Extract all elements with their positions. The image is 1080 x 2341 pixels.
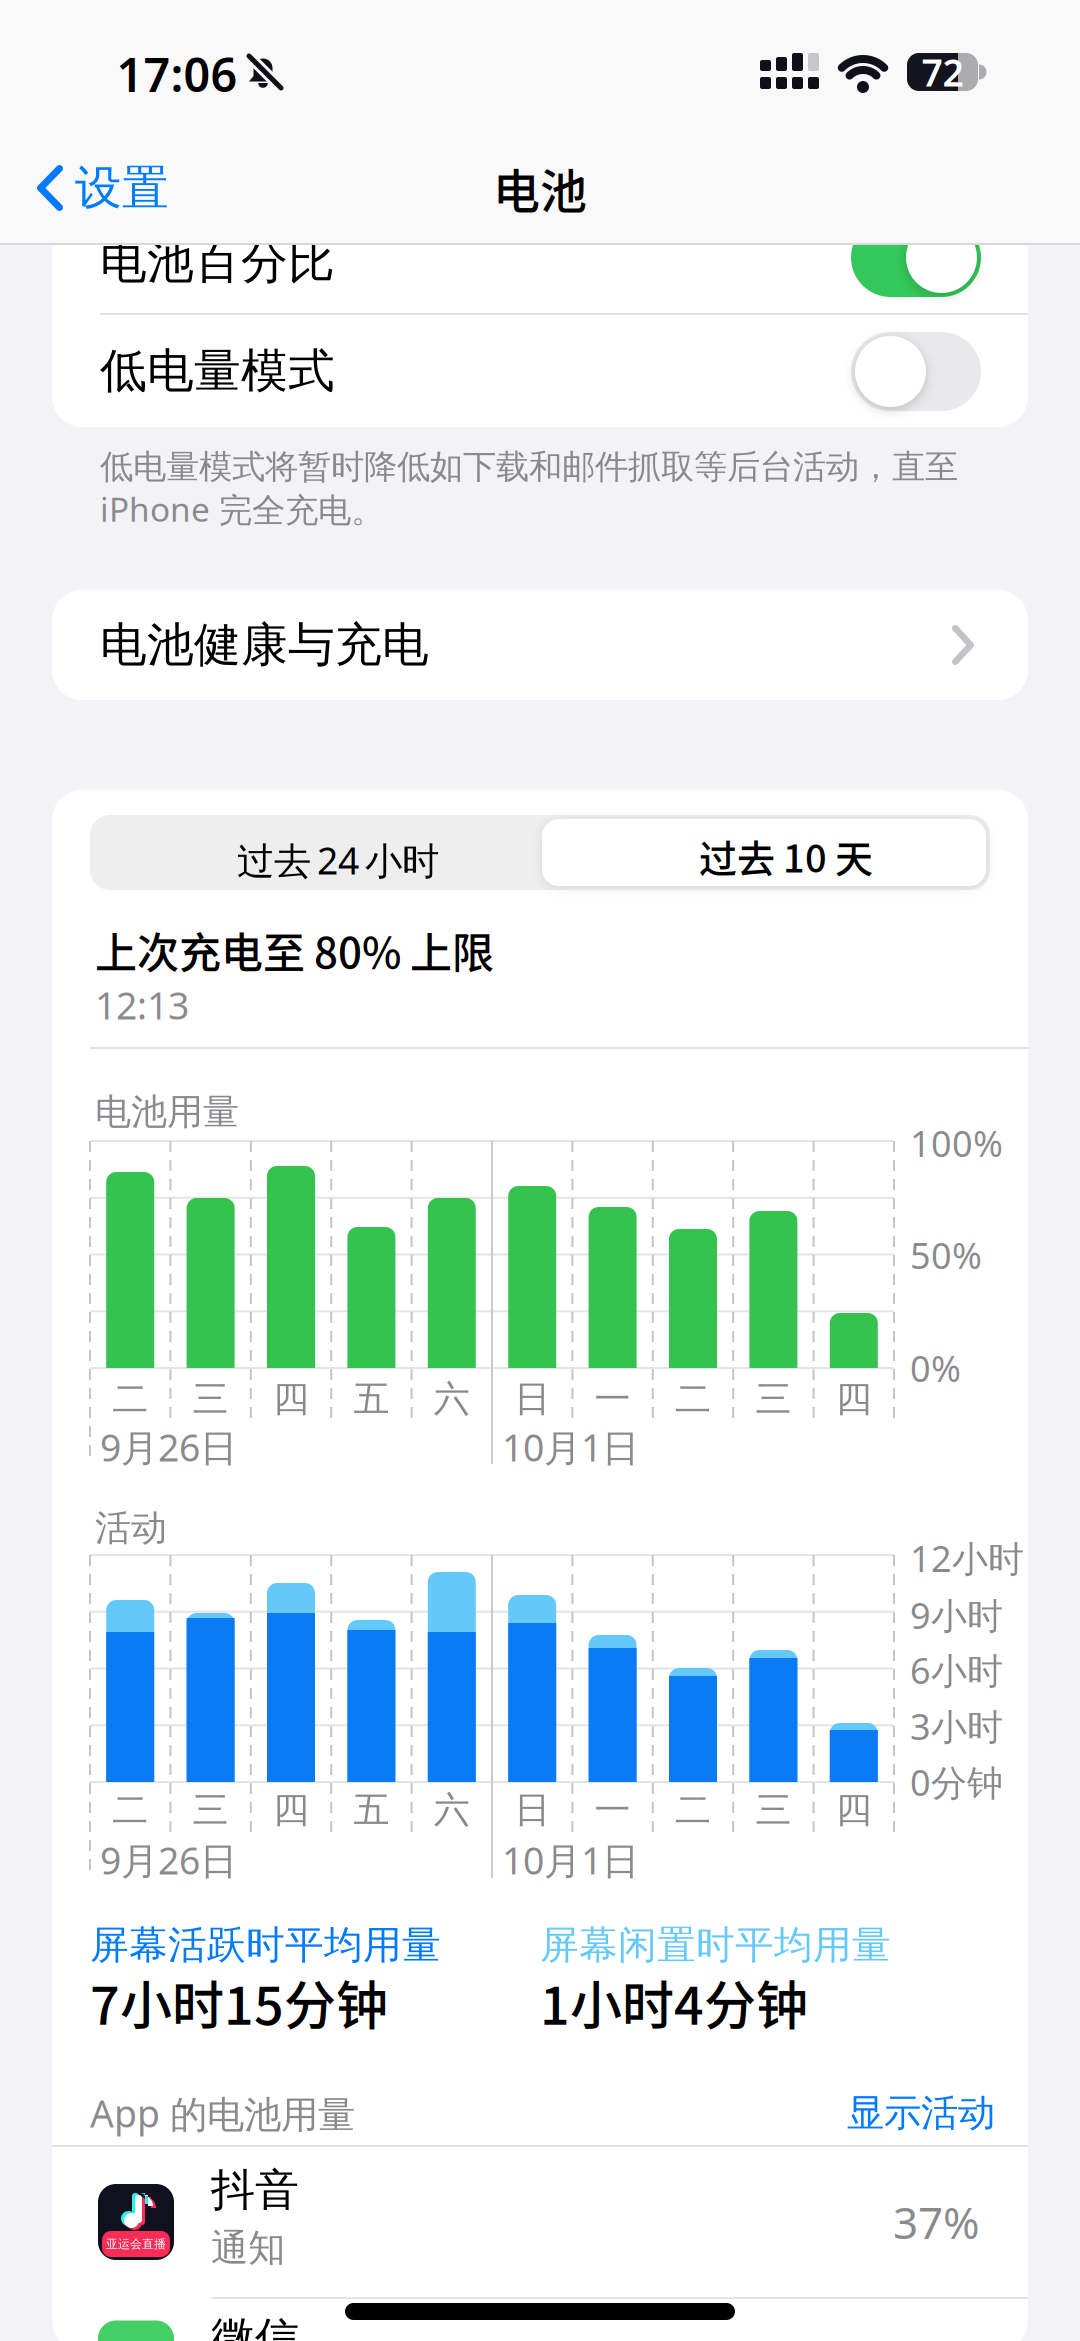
staticText: 0% [910,1344,961,1392]
staticText: 四 [836,1788,872,1832]
staticText: 二 [675,1788,711,1832]
staticText: 四 [273,1377,309,1421]
staticText: 过去 10 天 [699,828,873,883]
staticText: 六 [434,1788,470,1832]
staticText: 9小时 [910,1591,1003,1639]
staticText: 上次充电至 80% 上限 [95,920,494,980]
staticText: 四 [836,1377,872,1421]
staticText: 一 [595,1788,631,1832]
button[interactable]: 过去 10 天 [542,819,986,886]
staticText: 通知 [211,2225,285,2271]
staticText: 电池用量 [95,1090,239,1134]
staticText: 三 [755,1377,791,1421]
staticText: 三 [193,1788,229,1832]
button[interactable]: 电池百分比 [0,0,130,79]
staticText: 一 [595,1377,631,1421]
staticText: 7小时15分钟 [90,1964,388,2040]
staticText: 电池百分比 [100,233,335,291]
button[interactable]: 低电量模式 [0,0,130,79]
button[interactable]: 微信 [52,2300,1028,2341]
staticText: 设置 [75,159,169,217]
staticText: 10月1日 [502,1835,639,1885]
staticText: 12小时 [910,1534,1024,1582]
button[interactable]: 亚运会直播 [52,2153,1028,2298]
button[interactable]: 返回设置 [37,158,169,218]
staticText: 12:13 [95,980,189,1030]
staticText: 四 [273,1788,309,1832]
staticText: 屏幕闲置时平均用量 [540,1921,891,1969]
staticText: 50% [910,1231,982,1279]
staticText: 1小时4分钟 [540,1964,808,2040]
staticText: 显示活动 [847,2090,995,2136]
staticText: 三 [193,1377,229,1421]
staticText: 6小时 [910,1646,1003,1694]
staticText: 低电量模式将暂时降低如下载和邮件抓取等后台活动，直至 [100,446,958,487]
staticText: 72 [921,47,963,97]
staticText: 低电量模式 [100,342,335,400]
staticText: 二 [112,1377,148,1421]
staticText: iPhone 完全充电。 [100,487,384,531]
staticText: 日 [514,1377,550,1421]
staticText: 3小时 [910,1702,1003,1750]
staticText: 六 [434,1377,470,1421]
staticText: 抖音 [211,2163,299,2217]
staticText: 微信 [211,2311,299,2341]
button[interactable]: 显示活动 [0,0,400,60]
staticText: 电池 [493,154,587,222]
staticText: 0分钟 [910,1758,1003,1806]
staticText: App 的电池用量 [90,2088,355,2138]
button[interactable]: 电池健康与充电 [52,590,1028,700]
button[interactable]: 过去 24 小时 [90,815,538,890]
staticText: 二 [675,1377,711,1421]
staticText: 17:06 [116,43,237,105]
staticText: 日 [514,1788,550,1832]
staticText: 10月1日 [502,1422,639,1472]
staticText: 亚运会直播 [106,2237,166,2251]
staticText: 37% [893,2193,980,2251]
staticText: 五 [353,1788,389,1832]
staticText: 电池健康与充电 [100,616,429,674]
staticText: 五 [353,1377,389,1421]
staticText: 活动 [95,1506,167,1550]
staticText: 9月26日 [100,1422,237,1472]
staticText: 100% [910,1119,1003,1167]
staticText: 三 [755,1788,791,1832]
staticText: 9月26日 [100,1835,237,1885]
staticText: 屏幕活跃时平均用量 [90,1921,441,1969]
staticText: 过去 24 小时 [237,835,439,885]
staticText: 二 [112,1788,148,1832]
